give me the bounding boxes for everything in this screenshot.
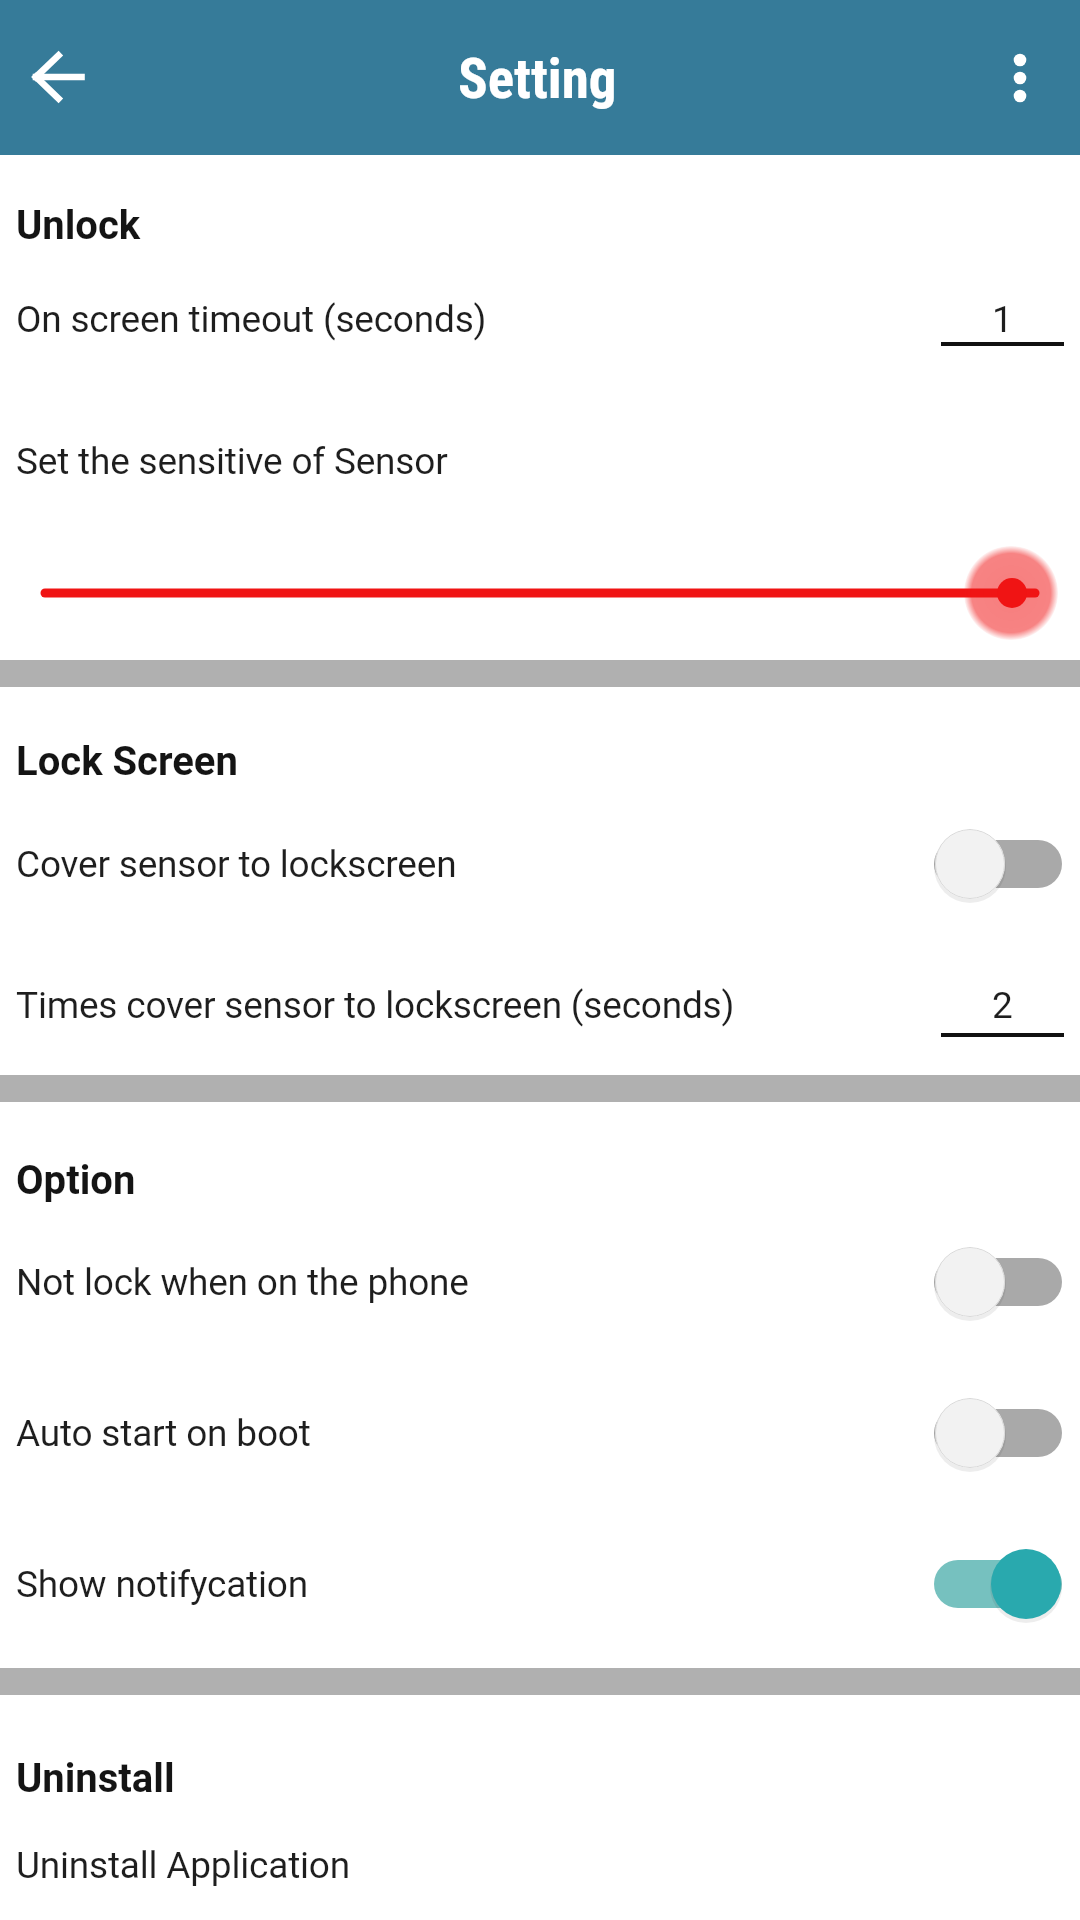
staticText: Show notifycation xyxy=(16,1563,308,1606)
staticText: Unlock xyxy=(16,202,141,249)
staticText: 1 xyxy=(992,298,1013,341)
button[interactable] xyxy=(0,270,1080,370)
button[interactable] xyxy=(0,1378,1080,1488)
button[interactable] xyxy=(0,533,1080,653)
button[interactable] xyxy=(18,37,102,117)
button[interactable] xyxy=(0,809,1080,919)
button[interactable] xyxy=(0,1815,1080,1915)
staticText: Set the sensitive of Sensor xyxy=(16,440,448,483)
staticText: On screen timeout (seconds) xyxy=(16,298,487,341)
staticText: Uninstall Application xyxy=(16,1844,350,1887)
staticText: Not lock when on the phone xyxy=(16,1261,469,1304)
staticText: Uninstall xyxy=(16,1755,175,1802)
button[interactable] xyxy=(0,955,1080,1055)
staticText: Option xyxy=(16,1157,136,1204)
button[interactable] xyxy=(984,38,1056,118)
staticText: Lock Screen xyxy=(16,738,238,785)
staticText: Times cover sensor to lockscreen (second… xyxy=(16,984,735,1027)
button[interactable] xyxy=(0,1227,1080,1337)
staticText: Setting xyxy=(458,47,617,111)
staticText: Cover sensor to lockscreen xyxy=(16,843,457,886)
button[interactable] xyxy=(0,1529,1080,1639)
staticText: 2 xyxy=(992,984,1013,1027)
staticText: Auto start on boot xyxy=(16,1412,311,1455)
